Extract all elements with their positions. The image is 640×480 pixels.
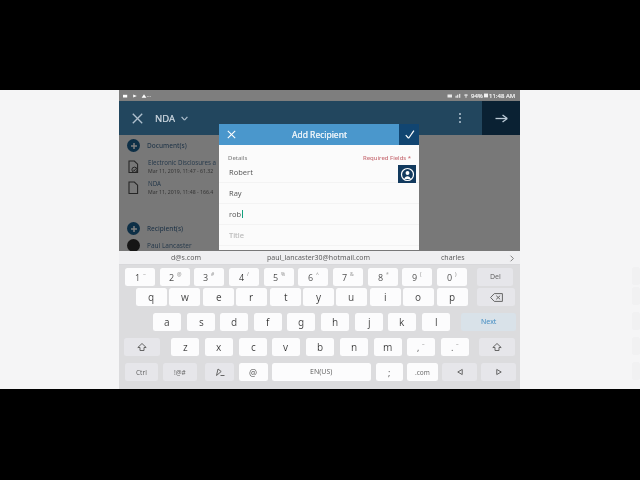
staticText: 5 <box>273 271 279 283</box>
button[interactable]: NDA <box>119 175 520 199</box>
staticText: Document(s) <box>147 141 187 150</box>
staticText: x <box>216 340 222 354</box>
button[interactable]: Close <box>119 101 155 135</box>
button[interactable]: More suggestions <box>504 251 520 265</box>
button[interactable]: Confirm <box>399 124 419 145</box>
button[interactable]: d <box>220 313 248 331</box>
button[interactable]: l <box>422 313 450 331</box>
staticText: v <box>283 340 289 354</box>
button[interactable]: Move right <box>481 363 516 381</box>
button[interactable]: o <box>403 288 434 306</box>
button[interactable]: @ <box>239 363 268 381</box>
staticText: b <box>317 340 324 354</box>
button[interactable]: Ray <box>219 183 419 204</box>
button[interactable]: q <box>136 288 167 306</box>
staticText: j <box>368 315 371 329</box>
staticText: m <box>383 340 393 354</box>
button[interactable]: i <box>370 288 401 306</box>
button[interactable]: p <box>437 288 468 306</box>
button[interactable]: Del <box>477 268 513 286</box>
button[interactable]: k <box>388 313 416 331</box>
button[interactable]: t <box>270 288 301 306</box>
staticText: & <box>350 271 354 278</box>
staticText: ^ <box>316 271 319 278</box>
button[interactable]: h <box>321 313 349 331</box>
button[interactable]: Paul Lancaster <box>119 237 520 253</box>
button[interactable]: ; <box>376 363 403 381</box>
button[interactable]: More options <box>444 101 476 135</box>
staticText: ( <box>420 271 422 278</box>
button[interactable]: 5 <box>264 268 294 286</box>
staticText: !@# <box>174 368 186 377</box>
button[interactable]: Electronic Disclosures a <box>119 154 520 178</box>
button[interactable]: 9 <box>402 268 432 286</box>
button[interactable]: EN(US) <box>272 363 371 381</box>
staticText: l <box>435 315 438 329</box>
button[interactable]: Ctrl <box>125 363 158 381</box>
button[interactable]: !@# <box>163 363 197 381</box>
button[interactable]: Next <box>482 101 520 135</box>
button[interactable]: 0 <box>437 268 467 286</box>
button[interactable]: Shift <box>124 338 160 356</box>
staticText: 1 <box>135 271 141 283</box>
button[interactable]: z <box>171 338 199 356</box>
staticText: o <box>415 290 422 304</box>
button[interactable]: Pick contact <box>398 165 416 183</box>
button[interactable]: 7 <box>333 268 363 286</box>
button[interactable]: Backspace <box>477 288 515 306</box>
button[interactable]: . <box>441 338 469 356</box>
button[interactable]: 3 <box>194 268 224 286</box>
staticText: Next <box>481 317 497 327</box>
button[interactable]: 6 <box>298 268 328 286</box>
staticText: d@s.com <box>171 253 201 263</box>
button[interactable]: c <box>239 338 267 356</box>
button[interactable]: f <box>254 313 282 331</box>
staticText: # <box>211 271 215 278</box>
button[interactable]: 4 <box>229 268 259 286</box>
button[interactable]: Move left <box>442 363 477 381</box>
button[interactable]: Title <box>219 225 419 246</box>
button[interactable]: a <box>153 313 181 331</box>
staticText: Ctrl <box>136 368 147 377</box>
button[interactable]: Document(s) <box>119 136 520 154</box>
button[interactable]: paul_lancaster30@hotmail.com <box>252 251 386 265</box>
button[interactable]: n <box>340 338 368 356</box>
button[interactable]: Recipient(s) <box>119 219 520 237</box>
staticText: rob <box>229 209 242 219</box>
staticText: p <box>449 290 456 304</box>
button[interactable]: Handwriting <box>205 363 234 381</box>
button[interactable]: w <box>169 288 200 306</box>
staticText: d <box>231 315 238 329</box>
button[interactable]: Robert <box>219 162 419 183</box>
staticText: y <box>316 290 322 304</box>
staticText: u <box>348 290 355 304</box>
button[interactable]: charles <box>386 251 520 265</box>
button[interactable]: .com <box>407 363 438 381</box>
button[interactable]: Shift <box>479 338 515 356</box>
button[interactable]: Close dialog <box>219 124 243 145</box>
button[interactable]: g <box>287 313 315 331</box>
button[interactable]: u <box>336 288 367 306</box>
button[interactable]: rob <box>219 204 419 225</box>
button[interactable]: b <box>306 338 334 356</box>
staticText: ~ <box>143 271 146 278</box>
button[interactable]: s <box>187 313 215 331</box>
button[interactable]: y <box>303 288 334 306</box>
button[interactable]: , <box>407 338 435 356</box>
button[interactable]: m <box>374 338 402 356</box>
button[interactable]: e <box>203 288 234 306</box>
button[interactable]: x <box>205 338 233 356</box>
staticText: n <box>351 340 358 354</box>
button[interactable]: d@s.com <box>119 251 252 265</box>
button[interactable]: 1 <box>125 268 155 286</box>
button[interactable]: v <box>272 338 300 356</box>
staticText: g <box>298 315 305 329</box>
button[interactable]: j <box>355 313 383 331</box>
button[interactable]: Next <box>461 313 516 331</box>
button[interactable]: r <box>236 288 267 306</box>
button[interactable]: 8 <box>368 268 398 286</box>
staticText: 3 <box>203 271 209 283</box>
button[interactable]: NDA <box>155 101 188 135</box>
button[interactable]: 2 <box>160 268 190 286</box>
staticText: % <box>281 271 286 278</box>
